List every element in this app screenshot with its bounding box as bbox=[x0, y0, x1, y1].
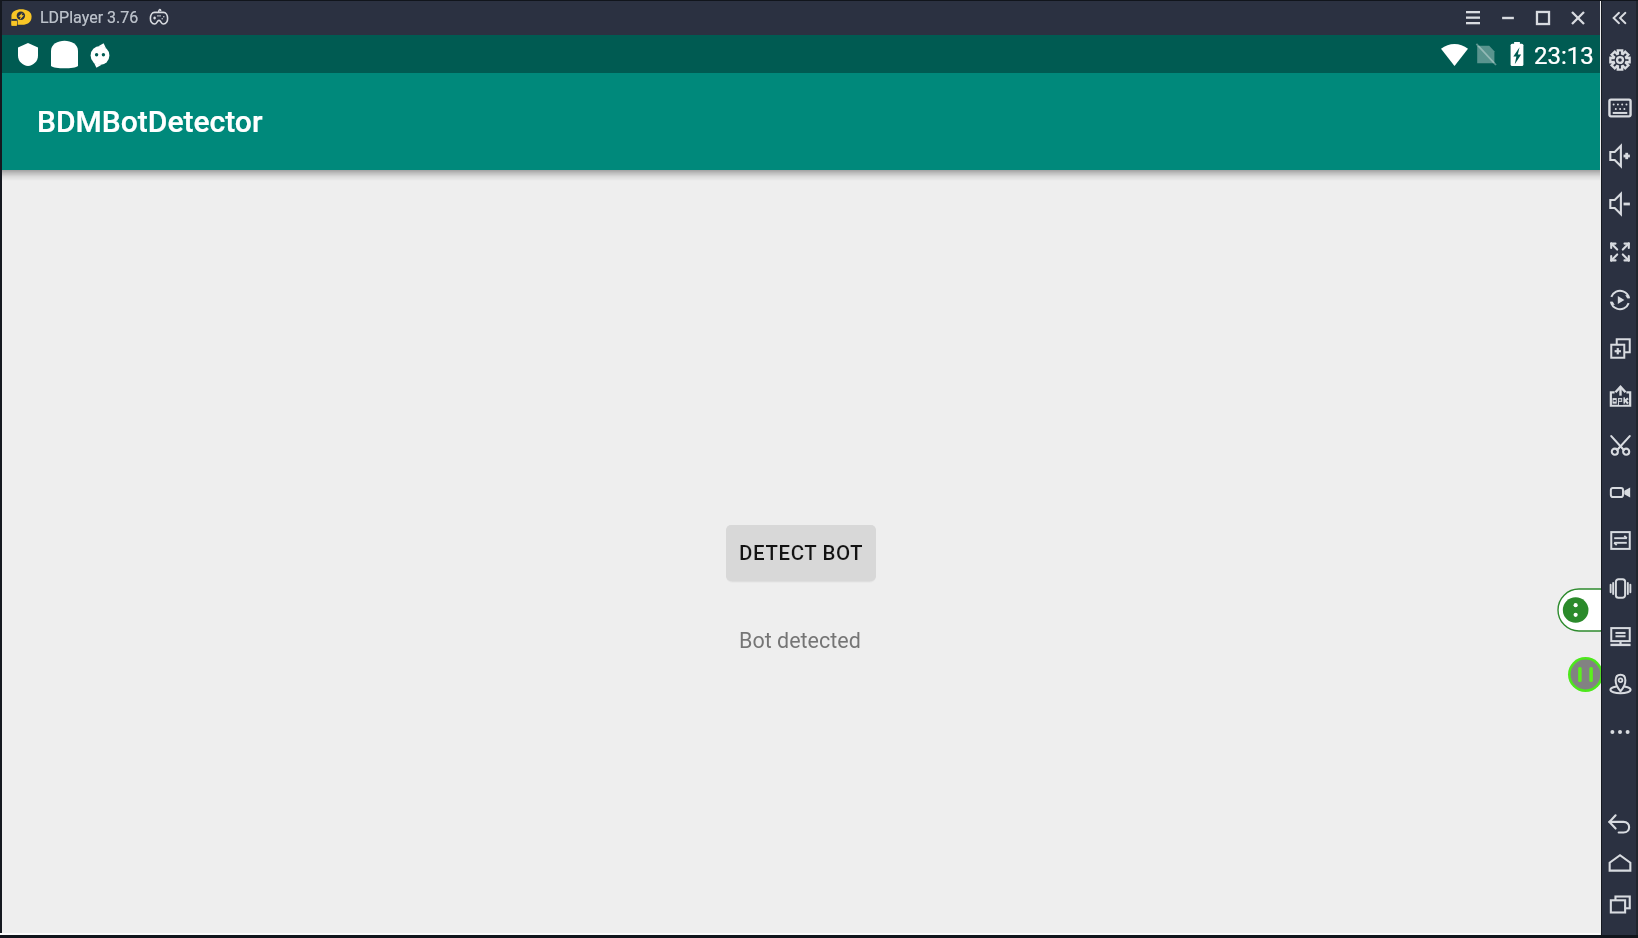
staticText: 23:13 bbox=[1534, 42, 1594, 70]
button[interactable]: Recents bbox=[1602, 885, 1638, 923]
button[interactable]: Keyboard bbox=[1602, 89, 1638, 127]
button[interactable]: Collapse bbox=[1602, 0, 1638, 37]
button[interactable]: Install APK bbox=[1602, 377, 1638, 415]
staticText: BDMBotDetector bbox=[37, 104, 263, 139]
button[interactable]: Home bbox=[1602, 845, 1638, 883]
button[interactable]: Record bbox=[1602, 473, 1638, 511]
button[interactable]: Shared folder bbox=[1602, 521, 1638, 559]
staticText: LDPlayer 3.76 bbox=[40, 8, 139, 27]
button[interactable]: Close bbox=[1560, 0, 1595, 35]
button[interactable]: Rotate bbox=[1602, 281, 1638, 319]
staticText: DETECT BOT bbox=[739, 541, 863, 565]
button[interactable]: Operation recorder bbox=[1602, 617, 1638, 655]
button[interactable]: Menu bbox=[1455, 0, 1490, 35]
button[interactable]: Back bbox=[1602, 806, 1638, 844]
button[interactable]: Settings bbox=[1602, 41, 1638, 79]
button[interactable]: Maximize bbox=[1525, 0, 1560, 35]
staticText: Bot detected bbox=[739, 628, 861, 653]
button[interactable]: Virtual location bbox=[1602, 665, 1638, 703]
button[interactable]: Shake bbox=[1602, 569, 1638, 607]
button[interactable]: DETECT BOT bbox=[726, 525, 876, 581]
button[interactable]: Screenshot bbox=[1602, 425, 1638, 463]
button[interactable]: Fullscreen bbox=[1602, 233, 1638, 271]
button[interactable]: More bbox=[1602, 713, 1638, 751]
button[interactable]: More options bbox=[1558, 589, 1600, 631]
button[interactable]: Minimize bbox=[1490, 0, 1525, 35]
button[interactable]: Volume up bbox=[1602, 137, 1638, 175]
button[interactable]: Multi instance bbox=[1602, 329, 1638, 367]
button[interactable]: Volume down bbox=[1602, 185, 1638, 223]
button[interactable]: Pause bbox=[1568, 657, 1603, 692]
